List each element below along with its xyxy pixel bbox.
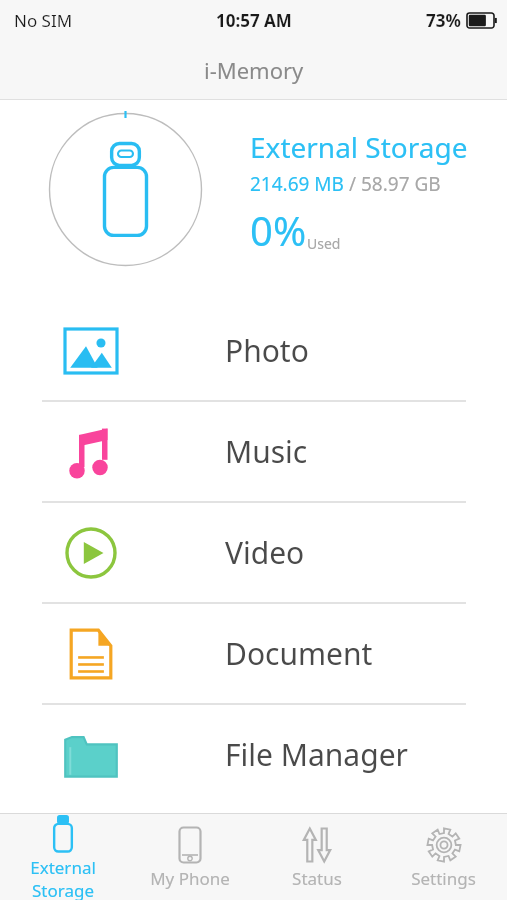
other: Settings bbox=[426, 827, 462, 863]
staticText: Status bbox=[292, 867, 342, 890]
button[interactable]: My Phone bbox=[126, 814, 253, 900]
staticText: 10:57 AM bbox=[216, 9, 292, 32]
staticText: External Storage bbox=[0, 856, 126, 900]
button[interactable]: Video bbox=[0, 503, 507, 602]
other: External Storage bbox=[50, 815, 76, 853]
staticText: Settings bbox=[411, 867, 476, 890]
staticText: My Phone bbox=[150, 867, 230, 890]
staticText: Used bbox=[307, 234, 341, 253]
staticText: Video bbox=[225, 532, 305, 573]
staticText: Photo bbox=[225, 330, 309, 371]
staticText: / 58.97 GB bbox=[344, 171, 441, 197]
button[interactable]: Music bbox=[0, 402, 507, 501]
button[interactable]: Status bbox=[253, 814, 380, 900]
other: My Phone bbox=[178, 826, 202, 864]
button[interactable]: Settings bbox=[380, 814, 507, 900]
other: Status bbox=[297, 827, 337, 863]
staticText: 73% bbox=[426, 9, 461, 32]
staticText: 214.69 MB bbox=[250, 171, 344, 197]
button[interactable]: File Manager bbox=[0, 705, 507, 804]
button[interactable]: Photo bbox=[0, 301, 507, 400]
staticText: No SIM bbox=[14, 9, 73, 32]
staticText: Music bbox=[225, 431, 308, 472]
staticText: External Storage bbox=[250, 128, 468, 166]
button[interactable]: Document bbox=[0, 604, 507, 703]
staticText: Document bbox=[225, 633, 373, 674]
staticText: 0% bbox=[250, 203, 307, 257]
button[interactable]: External Storage bbox=[0, 814, 126, 900]
staticText: i-Memory bbox=[204, 55, 304, 85]
staticText: File Manager bbox=[225, 734, 408, 775]
